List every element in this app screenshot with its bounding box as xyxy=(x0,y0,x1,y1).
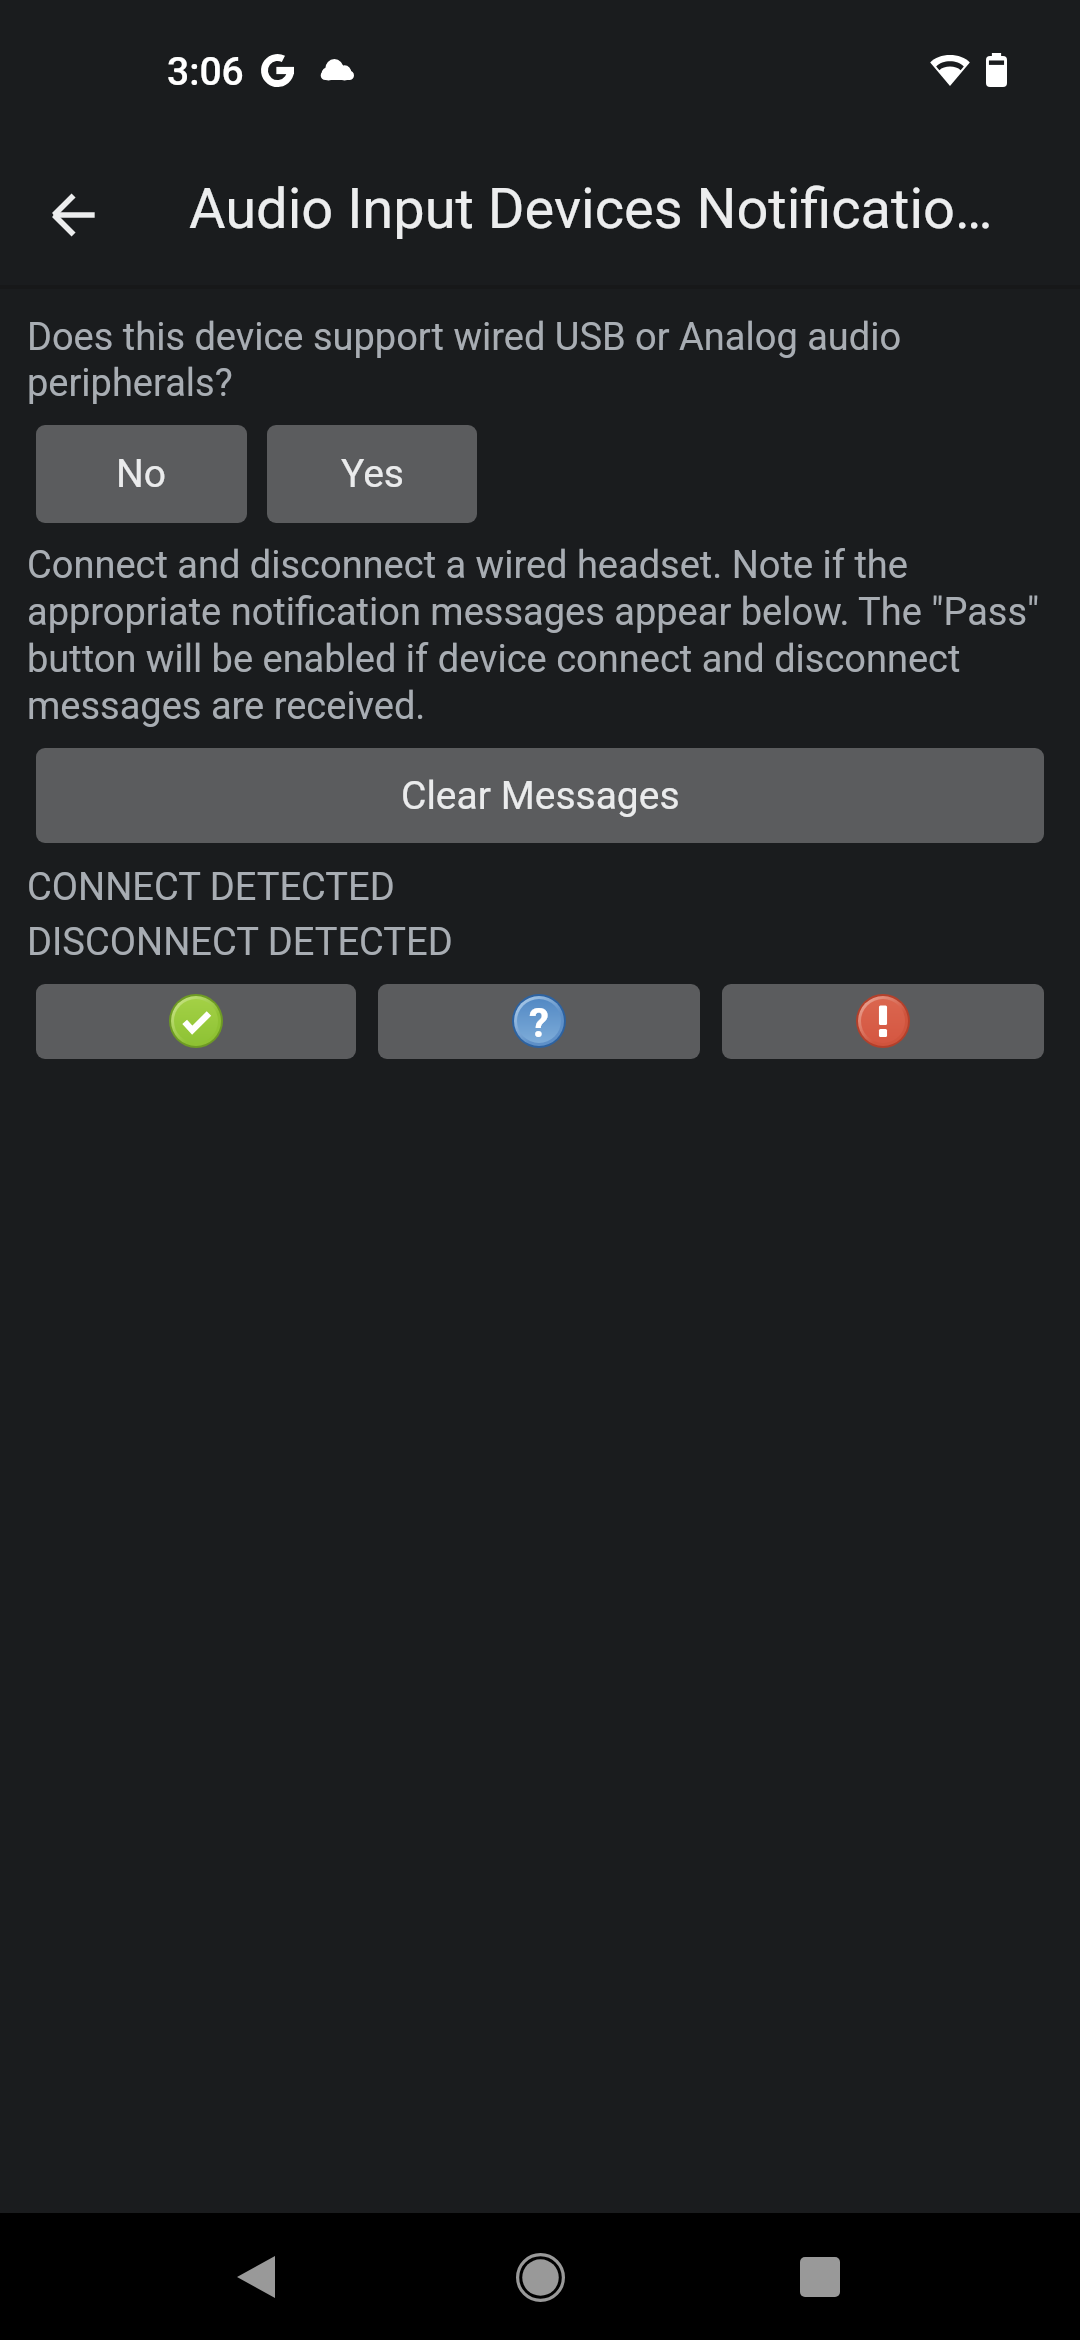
staticText: Clear Messages xyxy=(401,773,680,819)
staticText: Yes xyxy=(341,451,404,497)
staticText: Audio Input Devices Notificatio… xyxy=(189,176,993,242)
staticText: Connect and disconnect a wired headset. … xyxy=(27,543,1040,728)
button[interactable]: Recent apps xyxy=(760,2217,880,2337)
staticText: No xyxy=(116,451,167,497)
button[interactable]: Info xyxy=(378,984,700,1059)
button[interactable]: Clear Messages xyxy=(36,748,1044,843)
button[interactable]: Yes xyxy=(267,425,477,523)
button[interactable]: No xyxy=(36,425,247,523)
staticText: ? xyxy=(529,1000,549,1047)
button[interactable]: Back xyxy=(196,2217,316,2337)
button[interactable]: Navigate up xyxy=(26,167,122,263)
staticText: 3:06 xyxy=(167,49,244,95)
staticText: CONNECT DETECTED xyxy=(27,865,395,910)
button[interactable]: Home xyxy=(480,2217,600,2337)
staticText: DISCONNECT DETECTED xyxy=(27,920,453,965)
staticText: Does this device support wired USB or An… xyxy=(27,315,902,406)
button[interactable]: Pass xyxy=(36,984,356,1059)
button[interactable]: Fail xyxy=(722,984,1044,1059)
